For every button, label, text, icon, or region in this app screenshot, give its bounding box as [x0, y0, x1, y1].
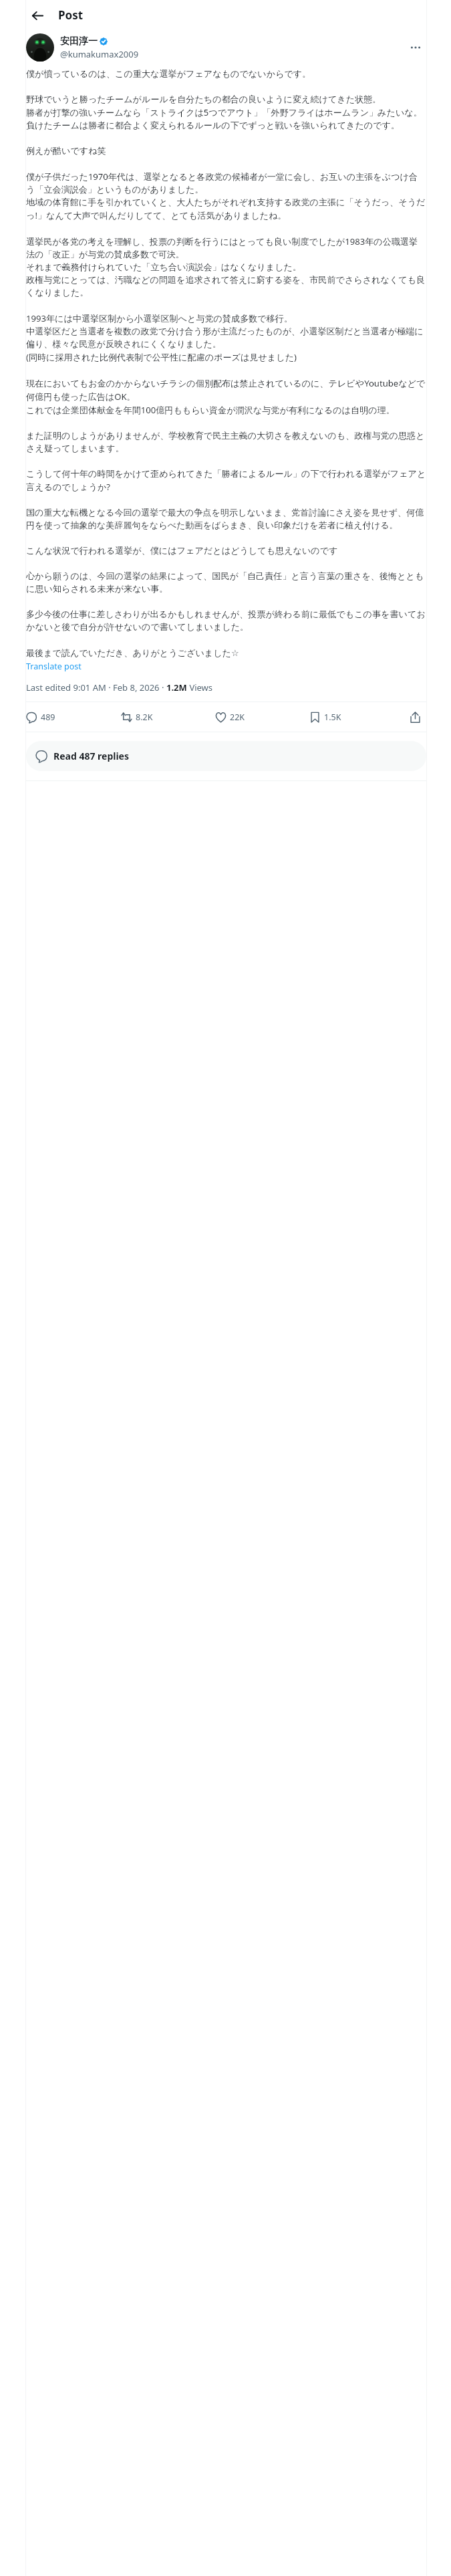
staticText: Post [58, 7, 84, 23]
staticText: 489 [41, 712, 55, 723]
staticText: Last edited 9:01 AM · Feb 8, 2026 · [26, 681, 166, 693]
staticText: 8.2K [136, 712, 153, 723]
staticText: 1.5K [324, 712, 341, 723]
button[interactable]: Back [26, 4, 49, 27]
button[interactable]: More [405, 37, 426, 58]
button[interactable]: 安田淳一 [60, 35, 108, 47]
button[interactable]: Repost [121, 702, 215, 732]
button[interactable]: Share [404, 706, 426, 728]
staticText: Translate post [26, 661, 82, 672]
staticText: 僕が憤っているのは、この重大な選挙がフェアなものでないからです。 野球でいうと勝… [26, 68, 426, 659]
button[interactable]: Like [215, 702, 309, 732]
staticText: Read 487 replies [53, 750, 130, 762]
button[interactable]: Profile picture [26, 33, 54, 62]
staticText: 1.2M [166, 681, 187, 693]
staticText: 安田淳一 [60, 35, 98, 47]
button[interactable]: Read 487 replies [26, 741, 426, 771]
button[interactable]: Last edited 9:01 AM · Feb 8, 2026 · [26, 681, 213, 693]
button[interactable]: Translate post [26, 660, 82, 673]
button[interactable]: Bookmark [309, 702, 404, 732]
staticText: Views [187, 681, 213, 693]
staticText: 22K [230, 712, 245, 723]
staticText: @kumakumax2009 [60, 48, 139, 60]
button[interactable]: Reply [26, 702, 121, 732]
